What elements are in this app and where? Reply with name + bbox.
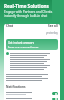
button[interactable] — [6, 92, 58, 95]
staticText: See all — [48, 24, 58, 28]
staticText: Notifications — [6, 85, 26, 89]
staticText: yesterday — [46, 31, 58, 35]
staticText: from our support team — [8, 46, 39, 48]
staticText: Real-Time Solutions — [4, 3, 49, 9]
button[interactable]: Get instant answers — [6, 39, 58, 50]
staticText: Chat — [6, 24, 13, 28]
button[interactable] — [6, 98, 58, 100]
staticText: Engage with Partners and Clients instant… — [4, 10, 60, 18]
staticText: Get instant answers — [8, 41, 35, 45]
